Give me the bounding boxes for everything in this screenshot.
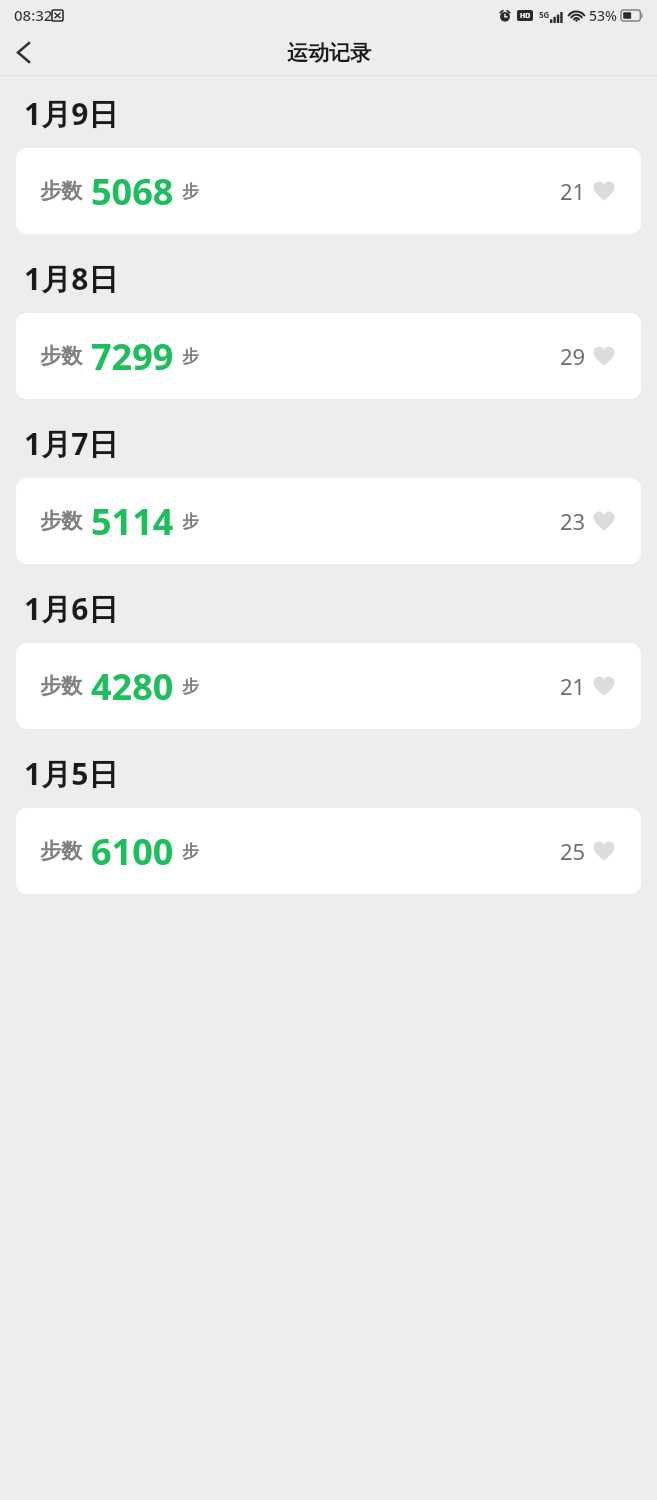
staticText: 步数 xyxy=(40,508,82,534)
button[interactable]: 步数 xyxy=(16,148,641,234)
staticText: 21 xyxy=(560,176,586,206)
button[interactable]: 步数 xyxy=(16,808,641,894)
staticText: 1月8日 xyxy=(24,258,119,299)
staticText: 步 xyxy=(182,511,199,532)
staticText: 1月6日 xyxy=(24,588,119,629)
staticText: 步数 xyxy=(40,838,82,864)
staticText: 步 xyxy=(182,346,199,367)
staticText: 5114 xyxy=(91,497,174,546)
staticText: 步 xyxy=(182,676,199,697)
staticText: 步数 xyxy=(40,343,82,369)
staticText: 步 xyxy=(182,181,199,202)
staticText: 5G xyxy=(539,9,550,20)
button[interactable]: 步数 xyxy=(16,313,641,399)
button[interactable]: Back xyxy=(0,30,46,75)
staticText: 5068 xyxy=(91,167,174,216)
staticText: 步 xyxy=(182,841,199,862)
staticText: 25 xyxy=(560,836,586,866)
staticText: 6100 xyxy=(91,827,174,876)
staticText: 1月5日 xyxy=(24,753,119,794)
staticText: 29 xyxy=(560,341,586,371)
staticText: 步数 xyxy=(40,178,82,204)
staticText: 4280 xyxy=(91,662,174,711)
staticText: 53% xyxy=(589,6,617,25)
staticText: 1月9日 xyxy=(24,93,119,134)
staticText: 7299 xyxy=(91,332,174,381)
staticText: 08:32 xyxy=(14,5,53,25)
button[interactable]: 步数 xyxy=(16,478,641,564)
staticText: HD xyxy=(520,11,531,21)
staticText: 1月7日 xyxy=(24,423,119,464)
staticText: 21 xyxy=(560,671,586,701)
staticText: 运动记录 xyxy=(287,40,371,66)
staticText: 23 xyxy=(560,506,586,536)
staticText: 步数 xyxy=(40,673,82,699)
button[interactable]: 步数 xyxy=(16,643,641,729)
